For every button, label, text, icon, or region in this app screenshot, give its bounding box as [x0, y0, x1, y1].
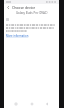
staticText: More information [6, 34, 29, 38]
staticText: Galaxy Buds Pro (09AC) [16, 11, 48, 15]
button[interactable]: Back [6, 5, 11, 10]
button[interactable]: Recents [13, 101, 19, 107]
button[interactable]: Home [29, 101, 35, 107]
button[interactable]: More information [6, 34, 29, 38]
button[interactable]: Galaxy Buds Pro (09AC) [4, 10, 59, 16]
staticText: Choose device [12, 5, 36, 10]
button[interactable]: Back [44, 101, 50, 107]
